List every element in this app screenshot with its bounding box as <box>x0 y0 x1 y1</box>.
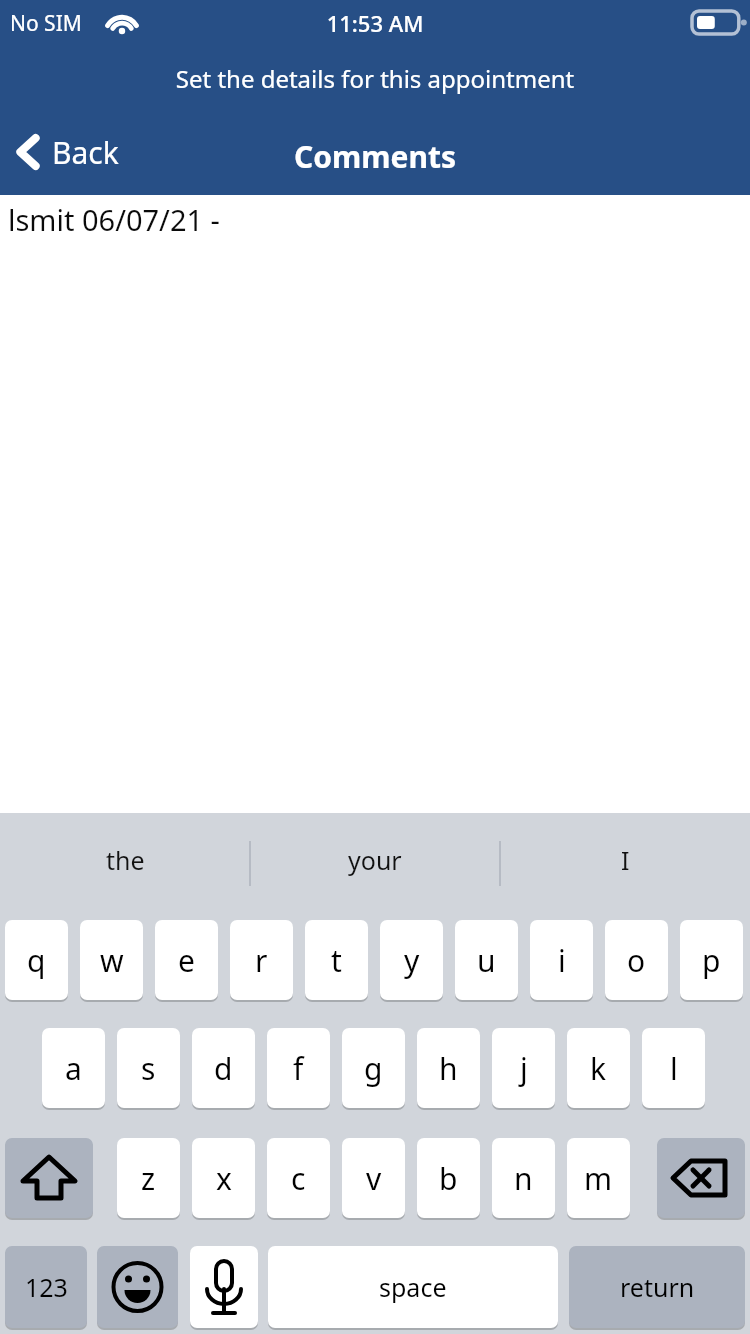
staticText: l <box>670 1048 678 1089</box>
button[interactable]: d <box>192 1028 255 1108</box>
button[interactable]: i <box>530 920 593 1000</box>
staticText: your <box>348 843 402 877</box>
button[interactable]: return <box>569 1246 745 1328</box>
button[interactable]: Dictate <box>190 1246 258 1328</box>
staticText: I <box>621 843 630 877</box>
staticText: g <box>364 1048 383 1089</box>
staticText: p <box>702 940 721 981</box>
button[interactable]: e <box>155 920 218 1000</box>
staticText: r <box>255 940 268 981</box>
button[interactable]: f <box>267 1028 330 1108</box>
staticText: t <box>331 940 342 981</box>
staticText: f <box>293 1048 304 1089</box>
staticText: x <box>216 1158 232 1199</box>
staticText: return <box>620 1270 695 1304</box>
button[interactable]: z <box>117 1138 180 1218</box>
button[interactable]: a <box>42 1028 105 1108</box>
staticText: v <box>366 1158 382 1199</box>
staticText: b <box>439 1158 458 1199</box>
button[interactable]: y <box>380 920 443 1000</box>
staticText: i <box>558 940 566 981</box>
staticText: q <box>27 940 46 981</box>
button[interactable]: I <box>500 831 750 889</box>
button[interactable]: Shift <box>5 1138 93 1218</box>
button[interactable]: s <box>117 1028 180 1108</box>
button[interactable]: Back <box>6 122 129 182</box>
staticText: Comments <box>0 136 750 177</box>
staticText: c <box>291 1158 306 1199</box>
button[interactable]: g <box>342 1028 405 1108</box>
button[interactable]: h <box>417 1028 480 1108</box>
button[interactable]: Backspace <box>657 1138 745 1218</box>
button[interactable]: 123 <box>5 1246 87 1328</box>
button[interactable]: space <box>268 1246 558 1328</box>
button[interactable]: v <box>342 1138 405 1218</box>
staticText: d <box>214 1048 233 1089</box>
staticText: u <box>477 940 496 981</box>
staticText: m <box>584 1158 613 1199</box>
button[interactable]: Emoji <box>97 1246 178 1328</box>
staticText: Back <box>52 132 119 173</box>
button[interactable]: x <box>192 1138 255 1218</box>
button[interactable]: q <box>5 920 68 1000</box>
button[interactable]: t <box>305 920 368 1000</box>
staticText: a <box>65 1048 82 1089</box>
staticText: lsmit 06/07/21 - <box>8 200 220 239</box>
button[interactable]: o <box>605 920 668 1000</box>
button[interactable]: the <box>0 831 250 889</box>
staticText: n <box>514 1158 533 1199</box>
button[interactable]: c <box>267 1138 330 1218</box>
button[interactable]: l <box>642 1028 705 1108</box>
button[interactable]: b <box>417 1138 480 1218</box>
staticText: y <box>404 940 420 981</box>
button[interactable]: your <box>250 831 500 889</box>
button[interactable]: n <box>492 1138 555 1218</box>
staticText: w <box>100 940 124 981</box>
staticText: No SIM <box>10 9 82 38</box>
button[interactable]: u <box>455 920 518 1000</box>
staticText: 11:53 AM <box>0 8 750 38</box>
button[interactable]: j <box>492 1028 555 1108</box>
staticText: Set the details for this appointment <box>0 62 750 95</box>
staticText: j <box>520 1048 528 1089</box>
staticText: e <box>178 940 195 981</box>
button[interactable]: r <box>230 920 293 1000</box>
staticText: k <box>590 1048 607 1089</box>
staticText: 123 <box>25 1270 68 1304</box>
button[interactable]: k <box>567 1028 630 1108</box>
staticText: s <box>141 1048 156 1089</box>
staticText: h <box>439 1048 458 1089</box>
button[interactable]: m <box>567 1138 630 1218</box>
button[interactable]: w <box>80 920 143 1000</box>
staticText: o <box>627 940 646 981</box>
staticText: z <box>141 1158 156 1199</box>
staticText: the <box>106 843 145 877</box>
button[interactable]: p <box>680 920 743 1000</box>
staticText: space <box>379 1270 447 1304</box>
